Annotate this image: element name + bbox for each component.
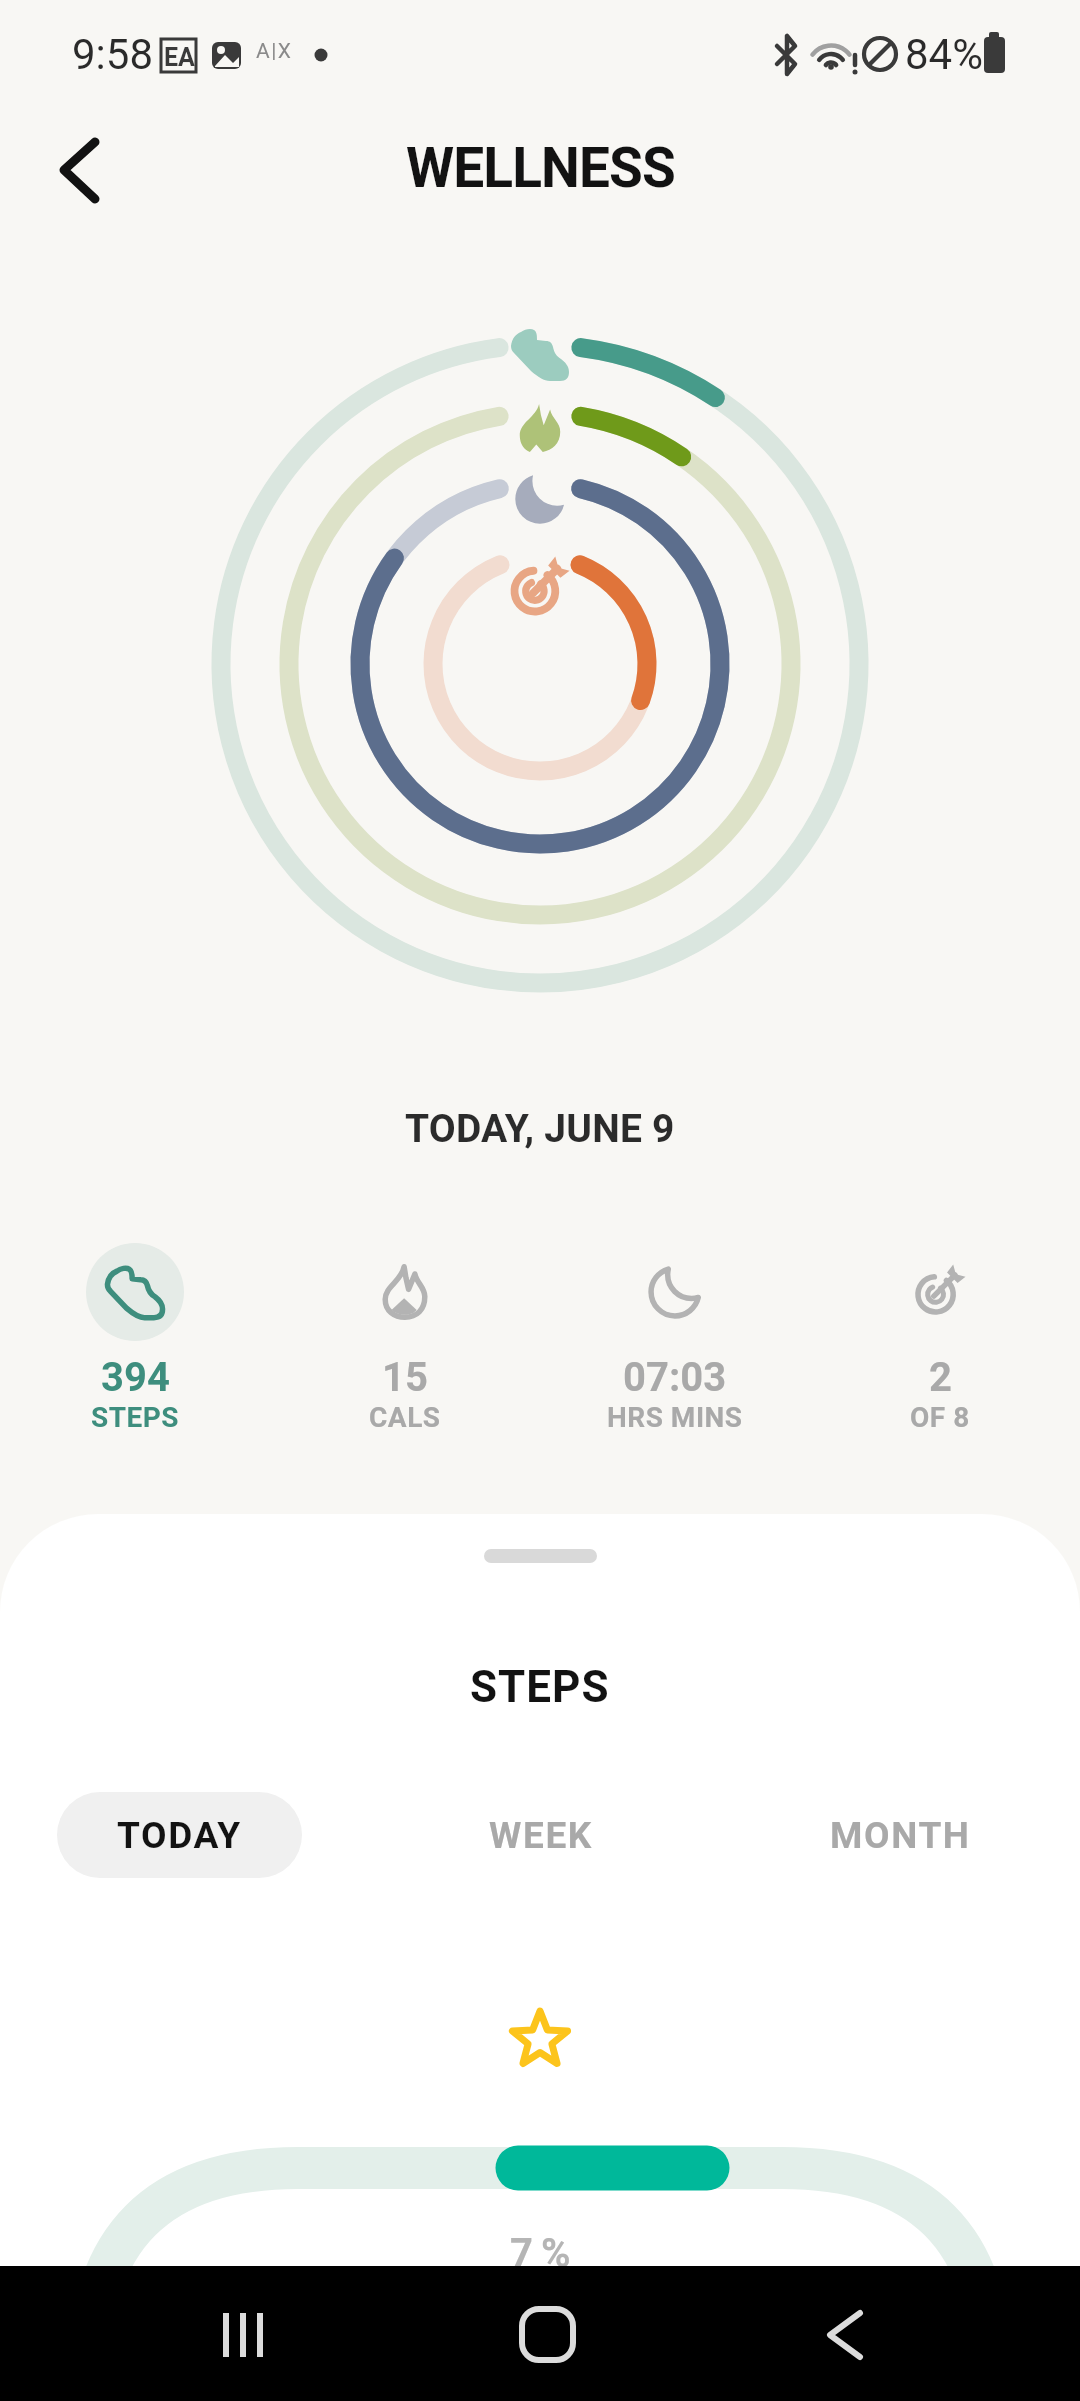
- staticText: WELLNESS: [406, 136, 675, 200]
- button[interactable]: TODAY: [57, 1792, 302, 1878]
- button[interactable]: Daily step goal progress: [0, 1984, 1080, 2401]
- staticText: 394: [101, 1354, 170, 1401]
- button[interactable]: 394: [15, 1230, 255, 1450]
- staticText: A|X: [256, 39, 293, 64]
- staticText: 84%: [905, 30, 983, 79]
- button[interactable]: Back: [32, 122, 128, 218]
- button[interactable]: Back: [785, 2275, 905, 2395]
- button[interactable]: 2: [820, 1230, 1060, 1450]
- staticText: TODAY: [117, 1814, 242, 1857]
- staticText: HRS MINS: [607, 1401, 743, 1434]
- staticText: 9:58: [72, 30, 153, 79]
- staticText: CALS: [369, 1401, 441, 1434]
- staticText: EA: [164, 43, 195, 72]
- staticText: 15: [382, 1354, 428, 1401]
- staticText: 07:03: [623, 1354, 727, 1401]
- staticText: STEPS: [91, 1401, 180, 1434]
- button[interactable]: MONTH: [778, 1792, 1023, 1878]
- button[interactable]: 07:03: [555, 1230, 795, 1450]
- staticText: 7 %: [510, 2230, 570, 2277]
- staticText: OF 8: [910, 1401, 970, 1434]
- staticText: 2: [929, 1354, 952, 1401]
- button[interactable]: Home: [488, 2275, 608, 2395]
- button[interactable]: Recent apps: [183, 2275, 303, 2395]
- staticText: WEEK: [489, 1814, 593, 1857]
- staticText: STEPS: [470, 1661, 610, 1713]
- staticText: TODAY, JUNE 9: [405, 1106, 675, 1152]
- staticText: MONTH: [830, 1814, 971, 1857]
- button[interactable]: Expand sheet: [484, 1549, 597, 1563]
- button[interactable]: WEEK: [418, 1792, 663, 1878]
- button[interactable]: 15: [285, 1230, 525, 1450]
